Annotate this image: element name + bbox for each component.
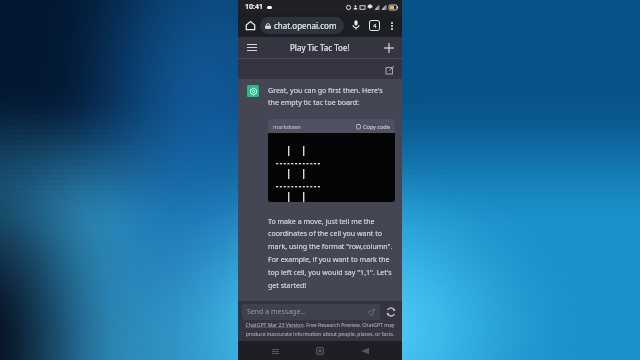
staticText: 10:41	[245, 2, 263, 12]
button[interactable]: Recent apps	[267, 343, 283, 359]
staticText: Send a message...	[247, 307, 306, 317]
button[interactable]: chat.openai.com	[260, 17, 344, 34]
staticText: 4	[373, 22, 377, 30]
button[interactable]: Regenerate response	[384, 305, 398, 319]
button[interactable]: Home	[312, 343, 328, 359]
staticText: Play Tic Tac Toe!	[290, 42, 350, 53]
button[interactable]: New chat	[381, 40, 396, 55]
button[interactable]: ChatGPT Mar 23 Version. Free Research Pr…	[238, 322, 402, 337]
button[interactable]: Open menu	[244, 40, 259, 55]
staticText: Copy code	[363, 123, 390, 130]
button[interactable]: Edit title	[383, 63, 396, 76]
staticText: markdown	[273, 123, 301, 130]
staticText: chat.openai.com	[274, 20, 337, 31]
staticText: To make a move, just tell me the coordin…	[268, 216, 395, 290]
other: Send	[368, 309, 375, 316]
button[interactable]: Back	[357, 343, 373, 359]
button[interactable]: Home	[242, 17, 258, 33]
staticText: Great, you can go first then. Here's the…	[268, 85, 395, 107]
button[interactable]: Switch tabs	[367, 18, 381, 32]
button[interactable]: Voice search	[349, 18, 363, 32]
button[interactable]: More options	[385, 19, 398, 32]
button[interactable]: Send a message...	[242, 304, 380, 320]
button[interactable]: Copy code	[356, 123, 390, 130]
